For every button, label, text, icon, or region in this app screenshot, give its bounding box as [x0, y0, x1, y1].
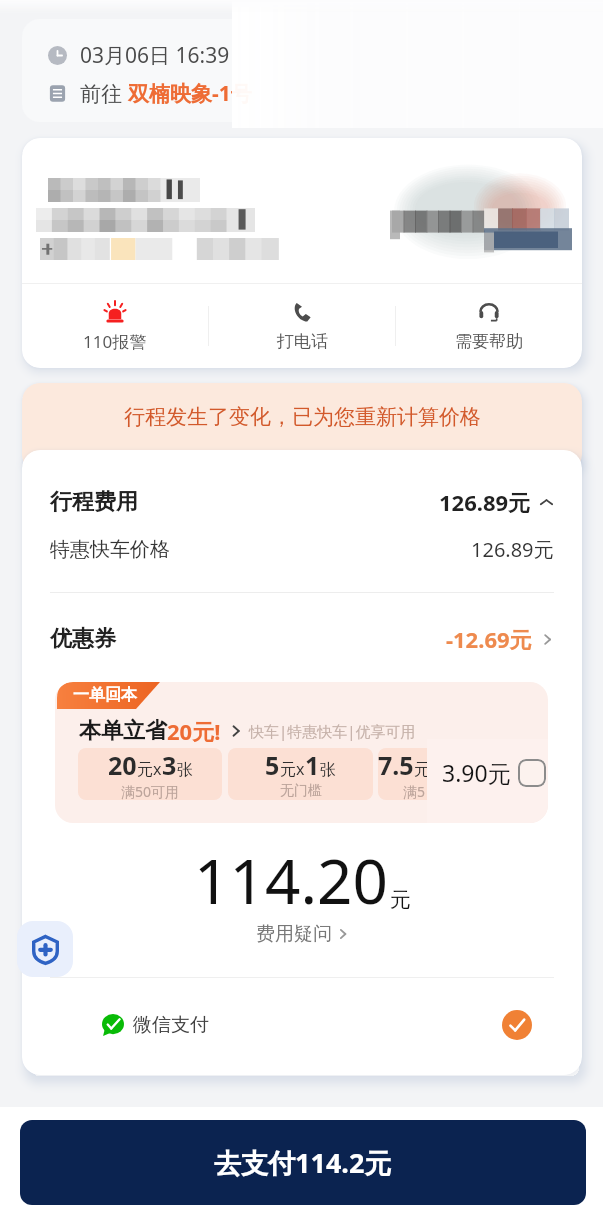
staticText: -12.69元 — [446, 624, 532, 654]
staticText: 双楠映象-1号 — [128, 79, 252, 108]
staticText: 3.90元 — [442, 757, 511, 788]
staticText: 微信支付 — [133, 1013, 209, 1037]
button[interactable]: 一单回本 — [55, 682, 548, 823]
staticText: 110报警 — [83, 330, 147, 353]
staticText: 前往 — [80, 79, 128, 108]
staticText: 3 — [162, 748, 177, 782]
staticText: 行程发生了变化，已为您重新计算价格 — [124, 404, 481, 430]
staticText: 7.5 — [378, 748, 414, 782]
staticText: 打电话 — [277, 331, 328, 352]
staticText: 元x — [414, 758, 439, 780]
staticText: 元x — [280, 758, 305, 780]
staticText: 元x — [137, 758, 162, 780]
button[interactable]: 110报警 — [22, 291, 208, 361]
staticText: 特惠快车价格 — [50, 537, 170, 562]
staticText: 费用疑问 — [256, 922, 332, 946]
staticText: 1 — [305, 748, 320, 782]
staticText: 满5 — [403, 782, 426, 800]
staticText: 满50可用 — [121, 782, 180, 800]
staticText: 03月06日 16:39 — [80, 41, 235, 70]
staticText: 2 — [439, 748, 450, 782]
staticText: 20 — [108, 748, 137, 782]
button[interactable]: 20 — [78, 748, 222, 800]
staticText: 需要帮助 — [455, 331, 523, 352]
button[interactable]: 7.5 — [378, 748, 450, 800]
staticText: 元 — [390, 887, 411, 913]
button[interactable]: 打电话 — [209, 292, 395, 360]
button[interactable]: Insurance — [17, 921, 73, 977]
staticText: 去支付114.2元 — [214, 1144, 392, 1181]
staticText: 张 — [177, 760, 193, 780]
staticText: 114.20 — [194, 838, 388, 922]
button[interactable]: 微信支付 — [50, 1005, 554, 1045]
staticText: 5 — [265, 748, 280, 782]
button[interactable]: 5 — [228, 748, 373, 800]
button[interactable]: 费用疑问 — [22, 922, 582, 946]
staticText: 张 — [320, 760, 336, 780]
staticText: 无门槛 — [280, 782, 322, 800]
button[interactable]: 去支付114.2元 — [20, 1120, 586, 1205]
staticText: 126.89元 — [471, 536, 554, 563]
staticText: 快车|特惠快车|优享可用 — [249, 721, 416, 741]
staticText: 20元! — [167, 716, 221, 746]
button[interactable]: 需要帮助 — [396, 292, 582, 360]
staticText: 优惠券 — [50, 625, 116, 653]
button[interactable]: Selected — [502, 1010, 532, 1040]
button[interactable]: 3.90元 — [442, 757, 546, 788]
button[interactable]: 03月06日 16:39 — [22, 19, 581, 122]
staticText: 126.89元 — [439, 487, 531, 517]
staticText: 行程费用 — [50, 488, 138, 516]
staticText: 一单回本 — [73, 685, 137, 705]
staticText: 本单立省 — [79, 717, 167, 745]
